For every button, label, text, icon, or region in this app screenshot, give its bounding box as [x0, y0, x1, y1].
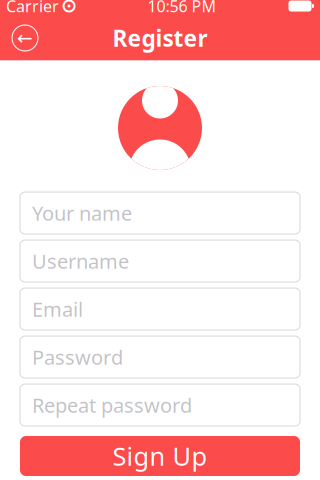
staticText	[59, 0, 63, 17]
staticText: ←	[17, 27, 33, 49]
staticText: Sign Up	[112, 439, 207, 473]
staticText: Email	[32, 296, 83, 322]
staticText: Your name	[32, 200, 132, 226]
staticText: Repeat password	[32, 392, 192, 418]
staticText: Register	[112, 23, 207, 53]
button[interactable]: Sign Up	[20, 436, 300, 476]
staticText: 10:56 PM	[147, 0, 216, 17]
staticText: Username	[32, 248, 129, 274]
button[interactable]: Back	[5, 18, 45, 58]
staticText: Carrier	[6, 0, 59, 17]
staticText: Password	[32, 344, 123, 370]
